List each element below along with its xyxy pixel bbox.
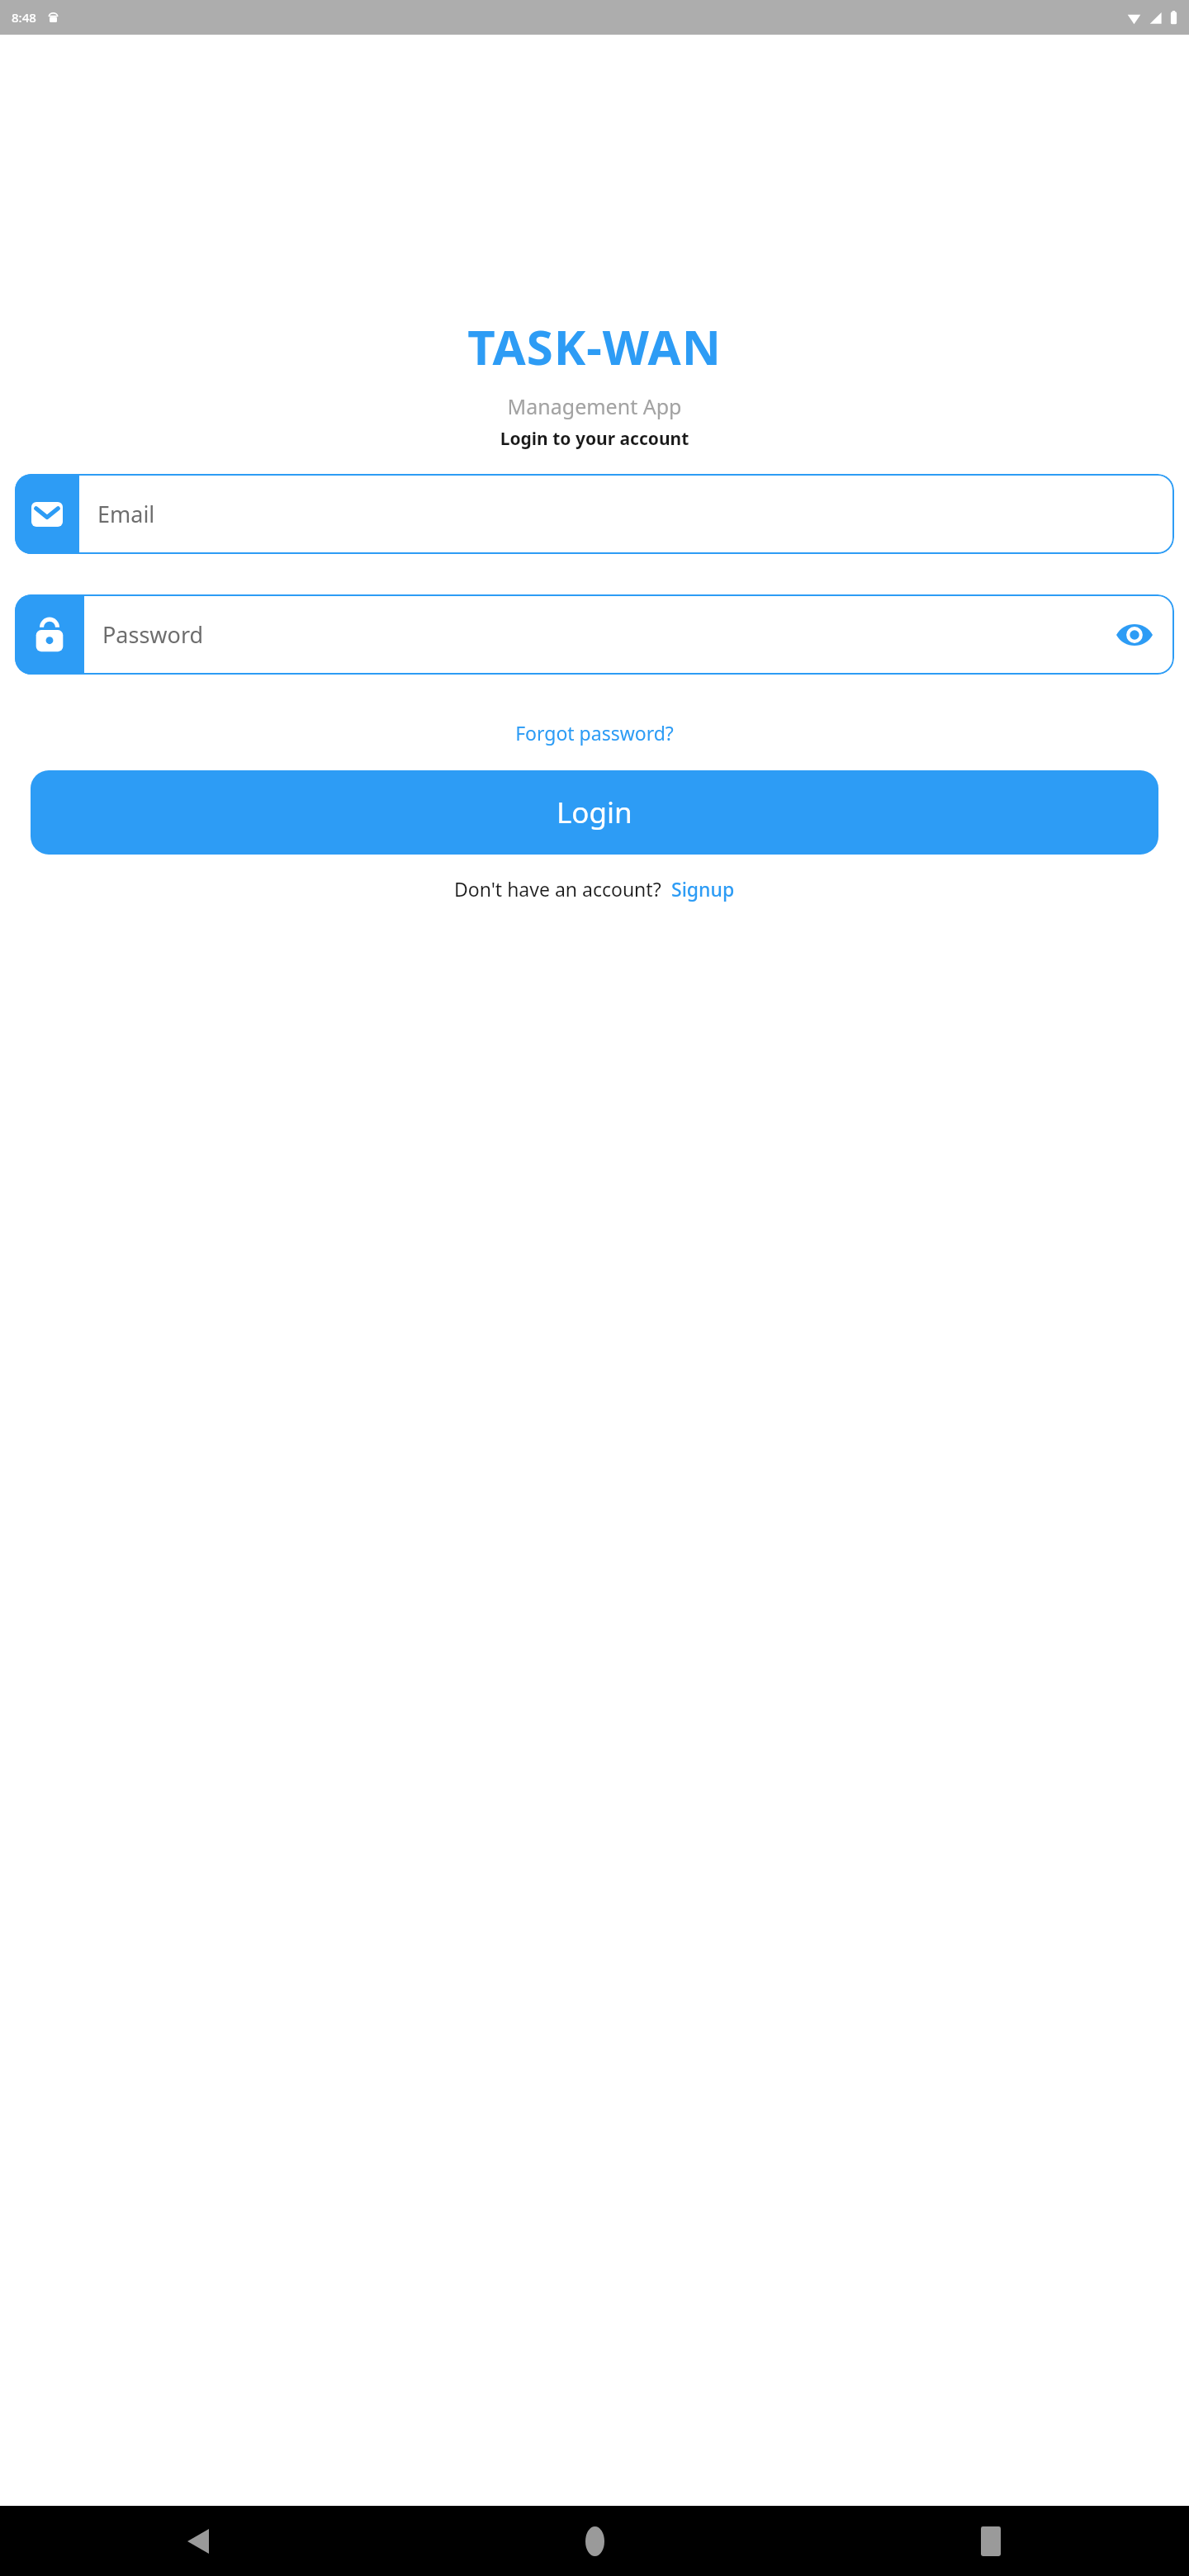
button[interactable]: Back <box>0 2506 396 2576</box>
staticText: Password <box>102 619 204 650</box>
staticText: Don't have an account? <box>454 876 661 902</box>
button[interactable]: Email <box>15 474 1174 554</box>
staticText: Email <box>97 499 155 529</box>
staticText: Signup <box>671 876 735 902</box>
button[interactable]: Login <box>31 770 1158 855</box>
staticText: Login <box>557 793 632 832</box>
staticText: Management App <box>0 392 1189 420</box>
staticText: TASK-WAN <box>0 314 1189 379</box>
other: Password <box>15 594 84 675</box>
button[interactable]: Show password <box>1113 613 1156 656</box>
staticText: 8:48 <box>12 9 36 26</box>
button[interactable]: Home <box>396 2506 793 2576</box>
staticText: Forgot password? <box>515 720 674 746</box>
button[interactable]: Forgot password? <box>0 720 1189 746</box>
other: Email <box>15 474 79 554</box>
button[interactable]: Recent apps <box>793 2506 1189 2576</box>
button[interactable]: Password <box>15 594 1174 675</box>
button[interactable]: Signup <box>671 876 735 902</box>
staticText: Login to your account <box>0 427 1189 451</box>
